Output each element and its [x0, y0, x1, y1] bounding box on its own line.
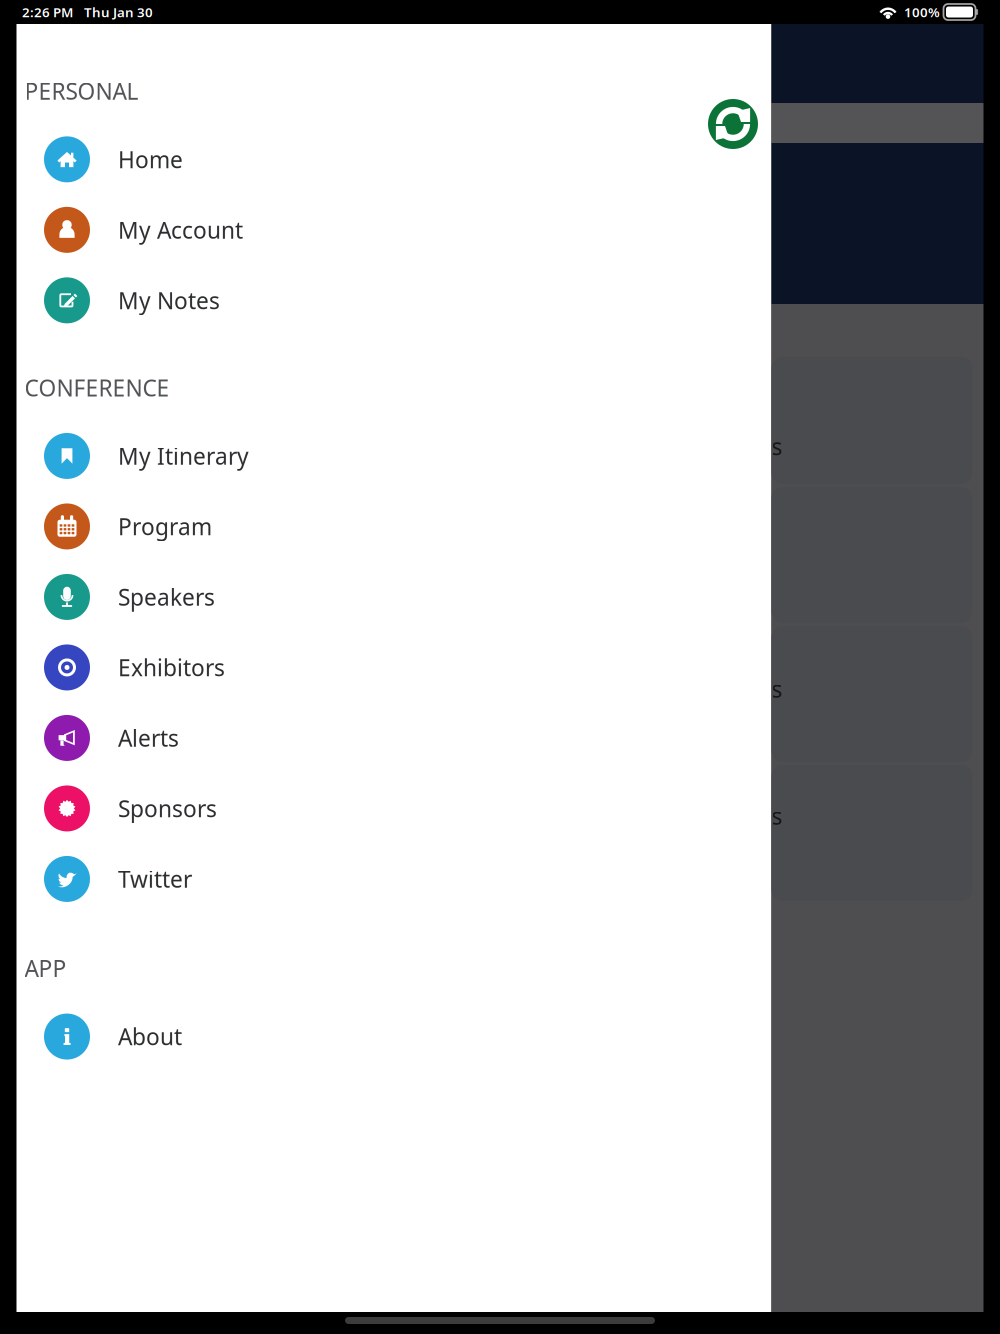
staticText: s — [771, 801, 782, 831]
staticText: 100% — [904, 3, 940, 21]
staticText: Exhibitors — [118, 652, 225, 682]
staticText: Speakers — [118, 582, 215, 612]
staticText: 2:26 PM — [22, 3, 73, 21]
staticText: Sponsors — [118, 793, 217, 823]
button[interactable]: Exhibitors — [16, 632, 771, 703]
staticText: CONFERENCE — [24, 373, 169, 403]
button[interactable]: Home — [16, 124, 771, 195]
staticText: My Account — [118, 215, 243, 245]
button[interactable]: My Itinerary — [16, 421, 771, 491]
staticText: My Notes — [118, 285, 220, 315]
button[interactable]: My Notes — [16, 265, 771, 336]
staticText: APP — [24, 953, 66, 983]
staticText: Thu Jan 30 — [84, 3, 153, 21]
staticText: My Itinerary — [118, 441, 249, 471]
button[interactable]: Sponsors — [16, 773, 771, 844]
staticText: Twitter — [118, 864, 192, 894]
staticText: Alerts — [118, 723, 179, 753]
staticText: s — [771, 674, 782, 704]
staticText: Home — [118, 144, 183, 174]
button[interactable]: Program — [16, 491, 771, 562]
staticText: Program — [118, 511, 212, 541]
staticText: About — [118, 1021, 182, 1052]
button[interactable]: Alerts — [16, 703, 771, 773]
button[interactable]: Twitter — [16, 844, 771, 914]
button[interactable]: My Account — [16, 195, 771, 265]
button[interactable]: Refresh — [708, 99, 758, 149]
button[interactable]: Speakers — [16, 562, 771, 632]
staticText: PERSONAL — [24, 76, 138, 106]
button[interactable]: About — [16, 1001, 771, 1072]
staticText: s — [771, 431, 782, 461]
